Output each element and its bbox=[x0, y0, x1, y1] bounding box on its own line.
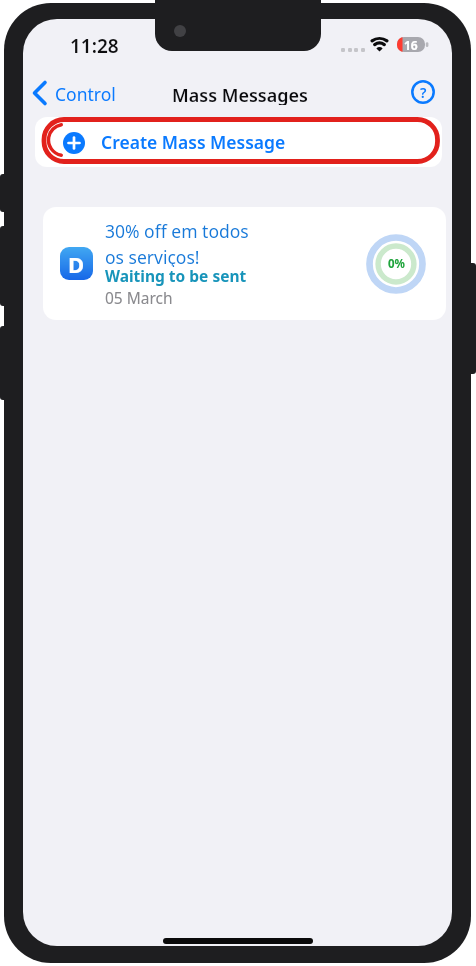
staticText: 0% bbox=[388, 256, 405, 272]
staticText: 11:28 bbox=[70, 33, 119, 57]
staticText: os serviços! bbox=[105, 245, 200, 267]
staticText: Waiting to be sent bbox=[105, 265, 247, 286]
staticText: 30% off em todos bbox=[105, 219, 249, 241]
staticText: ? bbox=[420, 83, 427, 102]
button[interactable]: D bbox=[43, 207, 446, 320]
button[interactable]: Create Mass Message bbox=[35, 117, 442, 167]
staticText: Create Mass Message bbox=[101, 130, 286, 154]
button[interactable]: ? bbox=[410, 79, 436, 105]
button[interactable]: Control bbox=[28, 78, 168, 108]
staticText: Mass Messages bbox=[172, 83, 308, 105]
staticText: 16 bbox=[404, 37, 418, 52]
staticText: Control bbox=[55, 82, 116, 104]
staticText: 05 March bbox=[105, 287, 173, 308]
staticText: D bbox=[68, 249, 85, 279]
